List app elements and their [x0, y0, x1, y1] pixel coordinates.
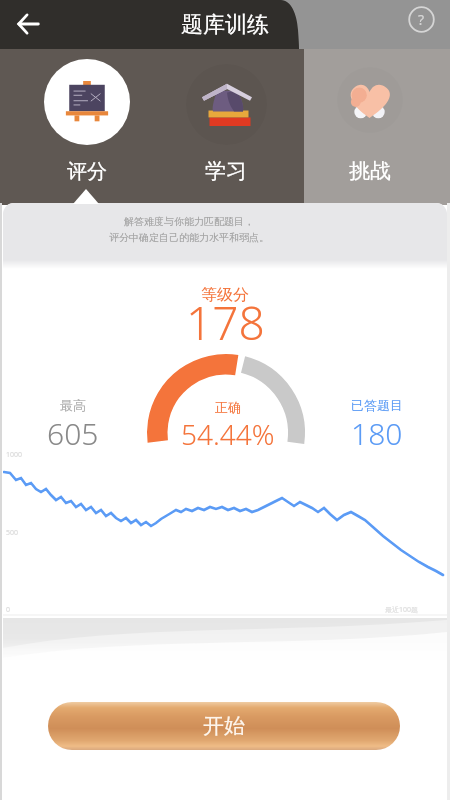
staticText: 挑战	[349, 158, 391, 184]
staticText: 评分	[67, 159, 107, 184]
button[interactable]: 学习	[164, 50, 288, 195]
button[interactable]: 评分	[25, 50, 149, 195]
staticText: 开始	[203, 713, 245, 739]
button[interactable]: 开始	[48, 702, 400, 750]
staticText: 500	[6, 528, 19, 538]
staticText: 已答题目	[351, 397, 403, 413]
staticText: 正确	[215, 399, 241, 415]
staticText: 54.44%	[181, 415, 275, 453]
staticText: 605	[47, 413, 99, 454]
staticText: 0	[6, 605, 11, 615]
staticText: 题库训练	[181, 11, 269, 39]
staticText: 学习	[205, 158, 247, 184]
button[interactable]: 挑战	[308, 50, 432, 195]
staticText: 最高	[60, 397, 86, 413]
staticText: 最近100题	[385, 605, 419, 615]
staticText: 解答难度与你能力匹配题目， 评分中确定自己的能力水平和弱点。	[109, 215, 269, 244]
staticText: 178	[186, 291, 265, 341]
staticText: 180	[351, 413, 403, 454]
staticText: 等级分	[201, 285, 249, 305]
button[interactable]: Back	[8, 4, 48, 44]
button[interactable]: Help	[403, 1, 439, 37]
staticText: ?	[418, 10, 425, 29]
staticText: 1000	[6, 450, 23, 460]
